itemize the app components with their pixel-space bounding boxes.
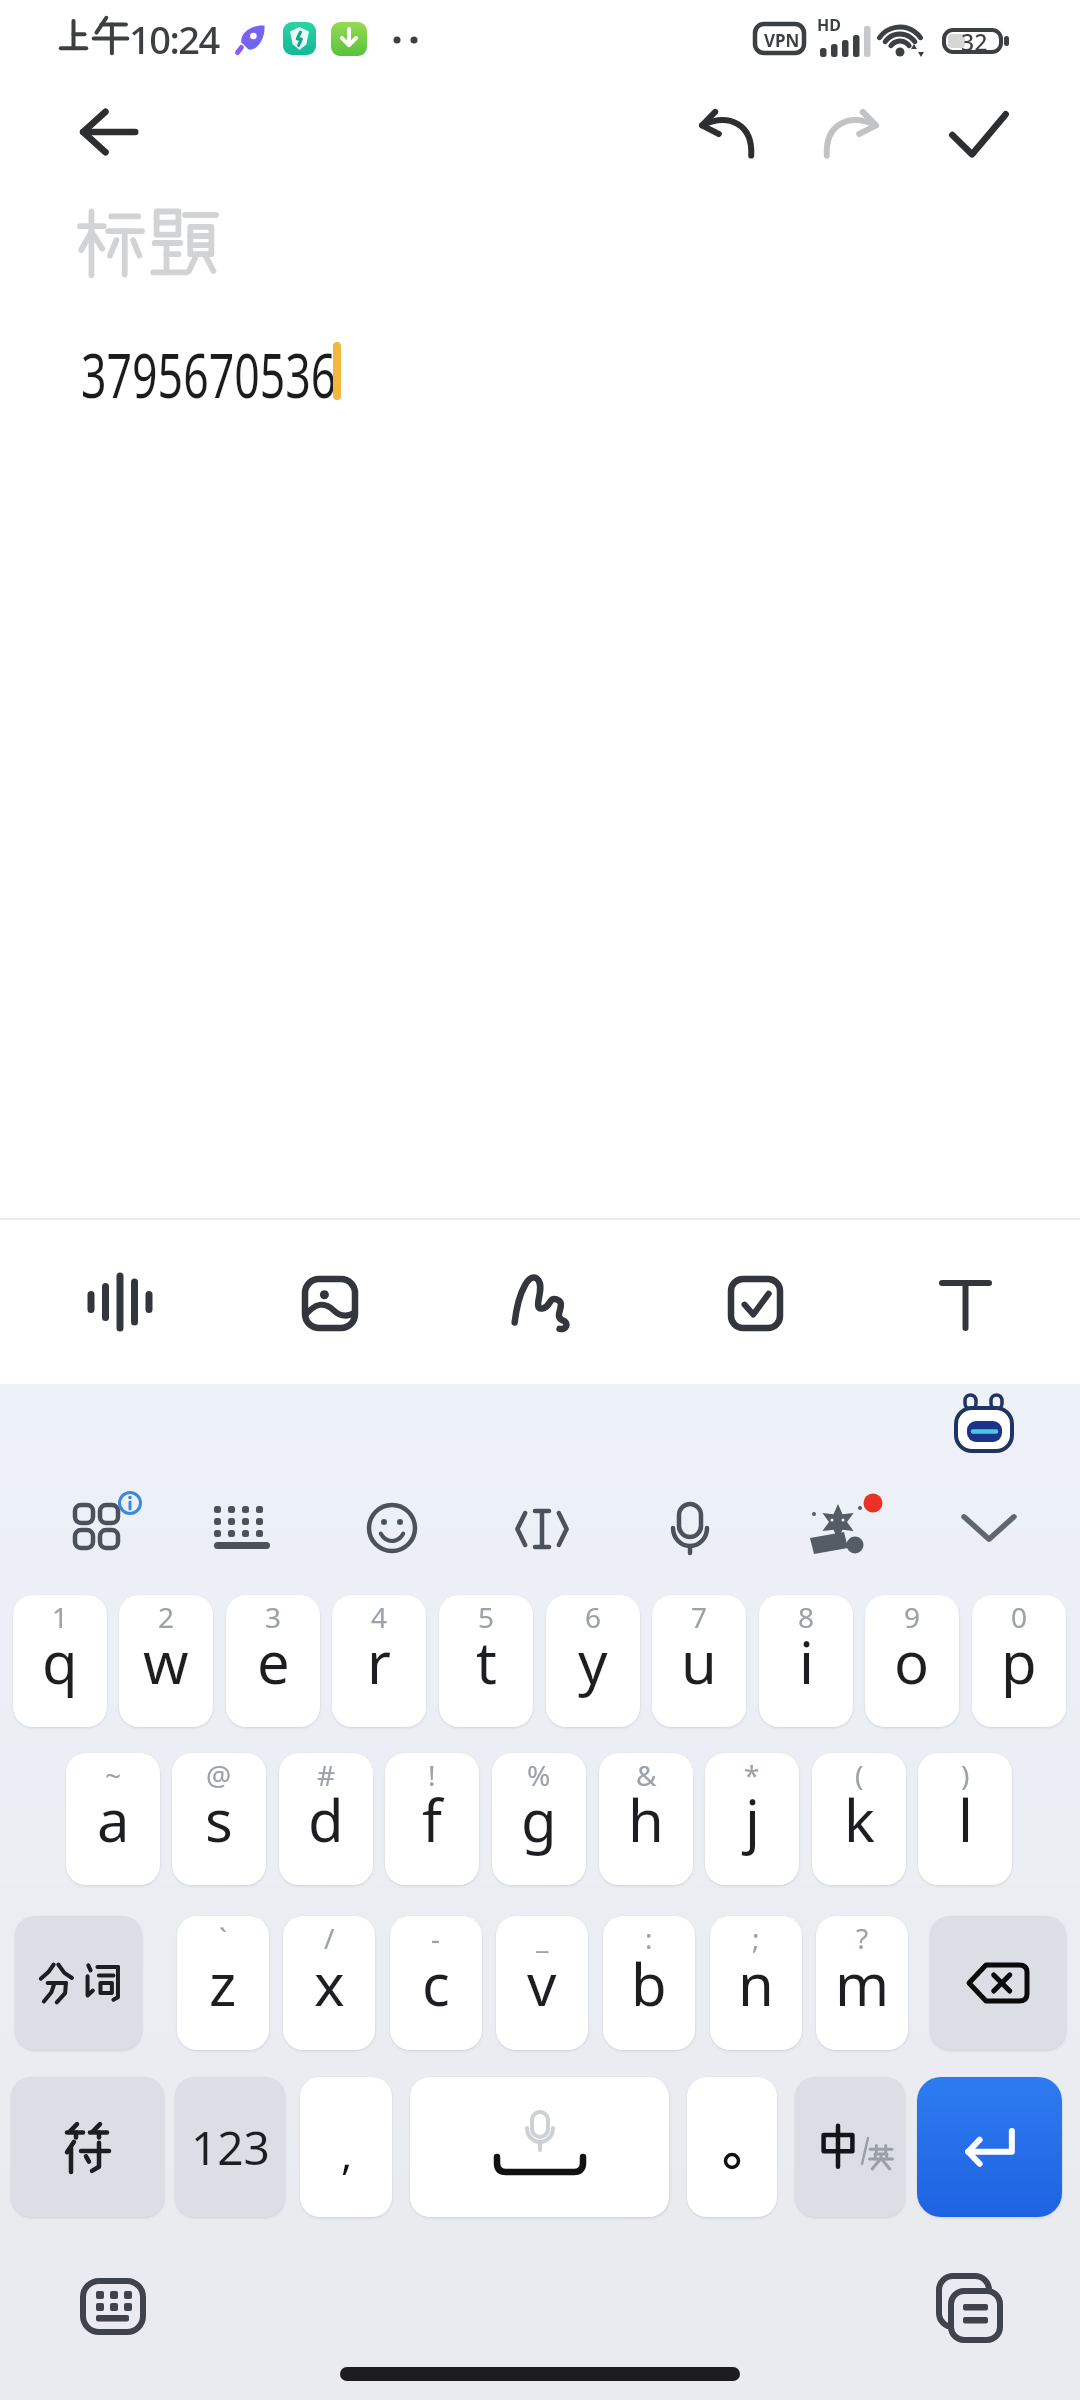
staticText: : bbox=[645, 1919, 653, 1957]
staticText: k bbox=[844, 1780, 875, 1859]
button[interactable] bbox=[195, 1480, 293, 1576]
staticText: j bbox=[745, 1780, 760, 1859]
staticText: f bbox=[422, 1780, 442, 1859]
staticText: t bbox=[476, 1622, 497, 1701]
button[interactable] bbox=[60, 94, 156, 170]
button[interactable] bbox=[915, 1252, 1015, 1352]
staticText: 1 bbox=[52, 1598, 69, 1636]
staticText: & bbox=[636, 1756, 657, 1794]
button[interactable] bbox=[917, 2077, 1062, 2217]
button[interactable]: 3 bbox=[226, 1595, 320, 1727]
button[interactable] bbox=[15, 1916, 142, 2050]
staticText: p bbox=[1001, 1622, 1037, 1701]
button[interactable]: ; bbox=[710, 1916, 802, 2050]
staticText: _ bbox=[536, 1919, 549, 1957]
button[interactable]: , bbox=[300, 2077, 392, 2217]
staticText: y bbox=[578, 1622, 608, 1701]
button[interactable] bbox=[280, 1252, 380, 1352]
button[interactable]: : bbox=[603, 1916, 695, 2050]
staticText: @ bbox=[206, 1756, 232, 1794]
staticText: 6 bbox=[585, 1598, 602, 1636]
staticText: x bbox=[314, 1944, 345, 2023]
button[interactable]: 1 bbox=[13, 1595, 107, 1727]
button[interactable]: 6 bbox=[546, 1595, 640, 1727]
staticText: ? bbox=[856, 1919, 869, 1957]
staticText: g bbox=[521, 1780, 557, 1859]
button[interactable] bbox=[684, 98, 768, 170]
staticText: l bbox=[958, 1780, 973, 1859]
button[interactable]: ~ bbox=[66, 1753, 160, 1885]
staticText: # bbox=[317, 1756, 336, 1794]
button[interactable]: ` bbox=[177, 1916, 269, 2050]
staticText: h bbox=[628, 1780, 664, 1859]
button[interactable]: 9 bbox=[865, 1595, 959, 1727]
staticText: s bbox=[205, 1780, 233, 1859]
button[interactable] bbox=[705, 1252, 805, 1352]
button[interactable]: - bbox=[390, 1916, 482, 2050]
button[interactable]: * bbox=[705, 1753, 799, 1885]
button[interactable] bbox=[70, 1252, 170, 1352]
button[interactable]: 4 bbox=[332, 1595, 426, 1727]
staticText: ` bbox=[219, 1919, 227, 1957]
staticText: r bbox=[367, 1622, 391, 1701]
staticText: u bbox=[681, 1622, 717, 1701]
button[interactable] bbox=[55, 1480, 155, 1576]
button[interactable] bbox=[920, 2260, 1020, 2354]
button[interactable]: 5 bbox=[439, 1595, 533, 1727]
button[interactable] bbox=[687, 2077, 777, 2217]
staticText: ~ bbox=[105, 1756, 122, 1794]
staticText: 3795670536 bbox=[81, 332, 337, 416]
button[interactable]: 123 bbox=[175, 2077, 285, 2217]
staticText: d bbox=[308, 1780, 344, 1859]
staticText: e bbox=[257, 1622, 290, 1701]
button[interactable] bbox=[343, 1480, 441, 1576]
button[interactable] bbox=[641, 1480, 739, 1576]
staticText: 3 bbox=[265, 1598, 282, 1636]
staticText: z bbox=[209, 1944, 237, 2023]
button[interactable]: 2 bbox=[119, 1595, 213, 1727]
staticText: , bbox=[341, 2125, 353, 2182]
button[interactable] bbox=[60, 320, 1020, 440]
staticText: n bbox=[738, 1944, 774, 2023]
button[interactable] bbox=[795, 2077, 905, 2217]
button[interactable] bbox=[930, 1916, 1066, 2050]
button[interactable] bbox=[950, 1392, 1018, 1456]
button[interactable]: ( bbox=[812, 1753, 906, 1885]
staticText: / bbox=[324, 1919, 335, 1957]
button[interactable]: ? bbox=[816, 1916, 908, 2050]
staticText: 0 bbox=[1011, 1598, 1028, 1636]
button[interactable]: ) bbox=[918, 1753, 1012, 1885]
button[interactable] bbox=[11, 2077, 164, 2217]
button[interactable] bbox=[790, 1480, 890, 1576]
button[interactable]: 7 bbox=[652, 1595, 746, 1727]
button[interactable]: # bbox=[279, 1753, 373, 1885]
button[interactable]: _ bbox=[496, 1916, 588, 2050]
button[interactable] bbox=[495, 1252, 595, 1352]
button[interactable]: % bbox=[492, 1753, 586, 1885]
staticText: 123 bbox=[191, 2116, 270, 2179]
staticText: * bbox=[744, 1756, 760, 1794]
button[interactable] bbox=[60, 2258, 160, 2354]
staticText: - bbox=[431, 1919, 441, 1957]
staticText: 7 bbox=[691, 1598, 708, 1636]
staticText: ; bbox=[752, 1919, 760, 1957]
button[interactable]: 0 bbox=[972, 1595, 1066, 1727]
button[interactable] bbox=[810, 98, 894, 170]
button[interactable]: / bbox=[283, 1916, 375, 2050]
staticText: m bbox=[835, 1944, 890, 2023]
staticText: ) bbox=[961, 1756, 970, 1794]
button[interactable] bbox=[930, 94, 1026, 170]
button[interactable]: & bbox=[599, 1753, 693, 1885]
button[interactable]: ! bbox=[385, 1753, 479, 1885]
staticText: VPN bbox=[764, 29, 800, 52]
staticText: ! bbox=[428, 1756, 436, 1794]
button[interactable] bbox=[410, 2077, 669, 2217]
button[interactable] bbox=[492, 1480, 590, 1576]
button[interactable]: @ bbox=[172, 1753, 266, 1885]
button[interactable] bbox=[934, 1484, 1034, 1574]
button[interactable]: 8 bbox=[759, 1595, 853, 1727]
staticText: 5 bbox=[478, 1598, 495, 1636]
staticText: b bbox=[631, 1944, 667, 2023]
staticText: o bbox=[894, 1622, 930, 1701]
button[interactable] bbox=[78, 205, 298, 285]
